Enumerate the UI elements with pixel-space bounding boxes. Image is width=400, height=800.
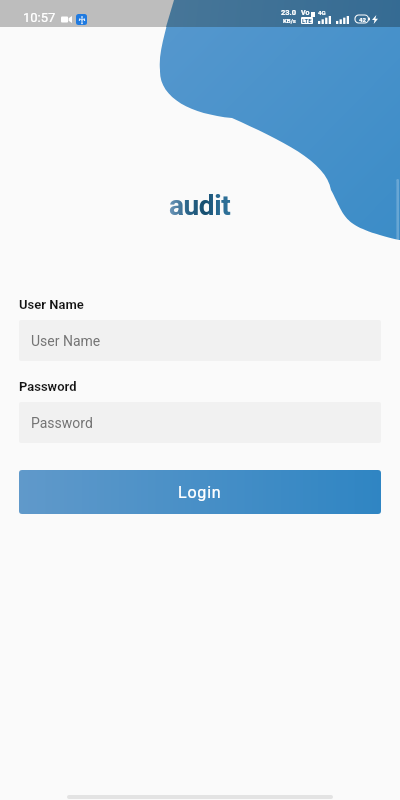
button[interactable]: Login [19,470,381,514]
staticText: Password [31,415,93,431]
staticText: 4G [318,9,326,16]
staticText: Vo [301,9,310,17]
staticText: 23.0 [281,8,297,17]
button[interactable]: User Name [19,320,381,361]
staticText: Password [19,379,77,394]
staticText: LTE [302,17,312,24]
staticText: Login [178,483,222,502]
staticText: KB/s [283,17,296,24]
staticText: 10:57 [23,10,56,25]
staticText: audit [169,189,231,222]
staticText: User Name [31,333,101,349]
button[interactable]: Password [19,402,381,443]
staticText: 42 [359,16,366,23]
staticText: User Name [19,297,84,312]
